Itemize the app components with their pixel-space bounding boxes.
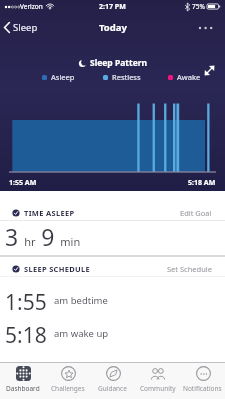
staticText: Dashboard — [6, 384, 40, 393]
staticText: Community — [140, 384, 176, 393]
staticText: Challenges — [51, 384, 85, 393]
button[interactable] — [198, 23, 214, 33]
staticText: 75% — [192, 2, 205, 11]
staticText: Sleep Pattern — [90, 57, 148, 69]
staticText: 5:18 — [5, 321, 47, 345]
button[interactable]: Sleep — [3, 21, 38, 34]
button[interactable]: Notifications — [180, 363, 225, 399]
staticText: Guidance — [98, 384, 127, 393]
button[interactable]: Guidance — [90, 363, 135, 399]
staticText: Asleep — [51, 72, 75, 82]
staticText: 1:55 AM — [9, 178, 37, 188]
button[interactable]: SLEEP SCHEDULE — [0, 263, 225, 275]
button[interactable]: 1:55 — [5, 288, 225, 312]
button[interactable] — [204, 65, 215, 76]
staticText: Today — [99, 21, 127, 34]
button[interactable]: Community — [135, 363, 180, 399]
staticText: Restless — [112, 72, 141, 82]
staticText: SLEEP SCHEDULE — [24, 264, 90, 274]
staticText: 3 hr 9 min — [5, 221, 81, 250]
button[interactable]: 3 hr 9 min — [5, 221, 225, 250]
button[interactable]: Dashboard — [0, 363, 45, 399]
staticText: 5:18 AM — [188, 178, 216, 188]
button[interactable]: Challenges — [45, 363, 90, 399]
staticText: am bedtime — [54, 294, 108, 307]
staticText: 2:17 PM — [99, 2, 126, 12]
staticText: Notifications — [183, 384, 222, 393]
staticText: Verizon — [20, 2, 43, 11]
button[interactable]: TIME ASLEEP — [0, 207, 225, 219]
button[interactable]: 5:18 — [5, 321, 225, 345]
staticText: Set Schedule — [167, 264, 212, 274]
staticText: Edit Goal — [180, 208, 212, 218]
staticText: Awake — [177, 72, 201, 82]
staticText: 1:55 — [5, 288, 47, 312]
staticText: TIME ASLEEP — [24, 208, 75, 218]
staticText: Sleep — [13, 21, 38, 34]
staticText: am wake up — [54, 327, 109, 340]
